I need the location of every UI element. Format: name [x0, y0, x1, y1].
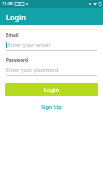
- staticText: 11:28: [2, 1, 13, 7]
- staticText: Login: [44, 86, 59, 94]
- button[interactable]: Login: [5, 83, 98, 96]
- staticText: Email: [6, 32, 19, 38]
- button[interactable]: Password: [0, 57, 103, 76]
- staticText: Password: [6, 57, 28, 63]
- button[interactable]: Sign Up: [0, 101, 103, 113]
- staticText: Sign Up: [41, 103, 62, 111]
- staticText: Enter your password: [6, 66, 59, 73]
- button[interactable]: Email: [0, 32, 103, 51]
- staticText: Enter your email: [8, 41, 50, 48]
- staticText: Login: [6, 12, 26, 22]
